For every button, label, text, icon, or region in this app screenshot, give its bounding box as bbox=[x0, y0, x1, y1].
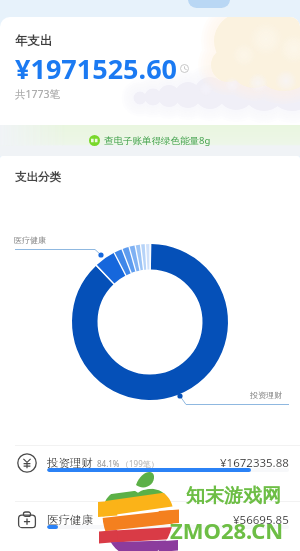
staticText: 支出分类 bbox=[15, 170, 61, 184]
staticText: ¥1672335.88 bbox=[220, 455, 289, 471]
staticText: 84.1% bbox=[97, 458, 120, 469]
staticText: ¥56695.85 bbox=[233, 512, 289, 528]
staticText: ZMO28.CN bbox=[170, 515, 284, 545]
button[interactable]: Info bbox=[178, 62, 190, 74]
button[interactable]: 投资理财 bbox=[0, 445, 300, 501]
staticText: 年支出 bbox=[15, 33, 53, 49]
button[interactable]: 医疗健康 bbox=[0, 502, 300, 551]
staticText: （199笔） bbox=[121, 458, 159, 469]
staticText: 投资理财 bbox=[47, 456, 93, 470]
button[interactable]: 查电子账单得绿色能量8g bbox=[0, 125, 300, 156]
staticText: 知末游戏网 bbox=[186, 484, 281, 508]
staticText: 投资理财 bbox=[250, 390, 282, 400]
staticText: 共1773笔 bbox=[15, 87, 61, 101]
staticText: 医疗健康 bbox=[47, 513, 93, 527]
staticText: 查电子账单得绿色能量8g bbox=[104, 134, 211, 147]
staticText: ¥1971525.60 bbox=[15, 50, 178, 87]
staticText: 医疗健康 bbox=[14, 235, 46, 245]
